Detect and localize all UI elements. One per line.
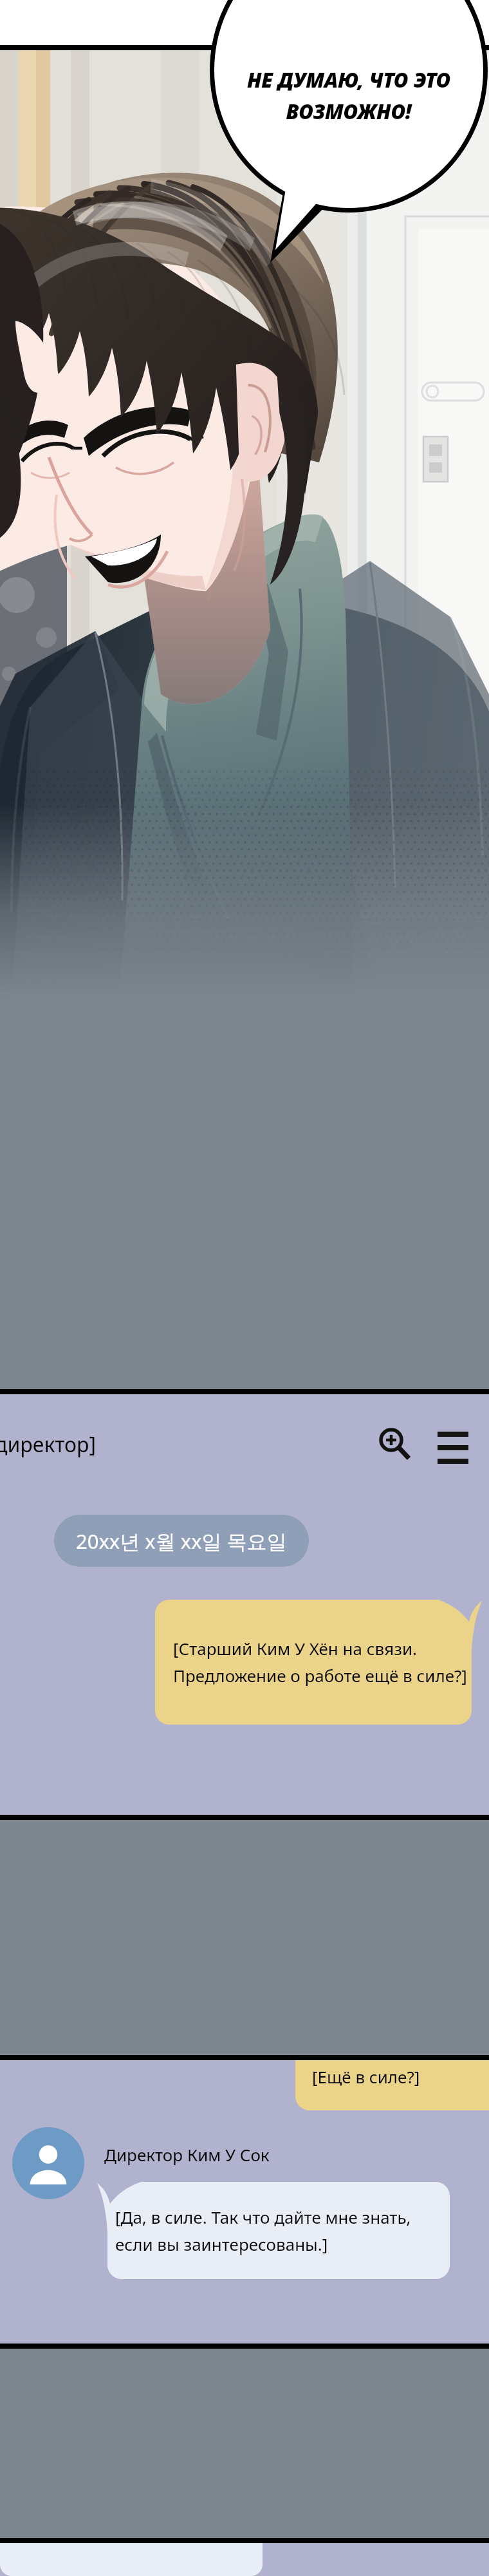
button[interactable]: [Ещё в силе?] xyxy=(295,2060,489,2110)
staticText: [Старший Ким У Хён на связи. Предложение… xyxy=(173,1637,467,1687)
button[interactable]: Menu xyxy=(430,1421,476,1468)
staticText: директор] xyxy=(0,1430,96,1459)
staticText: Директор Ким У Сок xyxy=(104,2143,270,2166)
button[interactable]: [Старший Ким У Хён на связи. Предложение… xyxy=(155,1600,482,1725)
button[interactable]: 20xx년 x월 xx일 목요일 xyxy=(54,1515,309,1567)
button[interactable]: Zoom in xyxy=(372,1421,418,1468)
button[interactable]: Profile photo xyxy=(12,2127,84,2199)
staticText: [Да, в силе. Так что дайте мне знать, ес… xyxy=(115,2206,411,2256)
button[interactable]: [Да, в силе. Так что дайте мне знать, ес… xyxy=(97,2182,450,2279)
staticText: НЕ ДУМАЮ, ЧТО ЭТО ВОЗМОЖНО! xyxy=(219,66,479,125)
staticText: 20xx년 x월 xx일 목요일 xyxy=(76,1528,287,1555)
staticText: [Ещё в силе?] xyxy=(312,2065,420,2088)
